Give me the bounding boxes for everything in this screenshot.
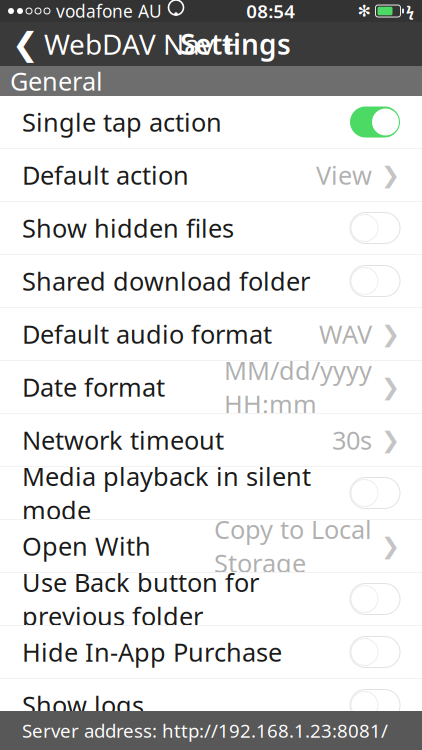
staticText: MM/dd/yyyy HH:mm — [224, 353, 372, 421]
staticText: Default action — [22, 158, 189, 192]
staticText: ❯ — [381, 427, 400, 453]
staticText: ❯ — [381, 533, 400, 559]
staticText: ❯ — [381, 374, 400, 400]
staticText: Server address: http://192.168.1.23:8081… — [22, 718, 388, 743]
button[interactable]: ❮ — [0, 17, 237, 71]
staticText: Open With — [22, 529, 151, 563]
button[interactable]: Use Back button for previous folder — [0, 573, 422, 626]
staticText: Date format — [22, 370, 165, 404]
staticText: ϟ — [406, 1, 414, 21]
staticText: General — [10, 64, 103, 98]
staticText: 30s — [332, 423, 372, 457]
staticText: Network timeout — [22, 423, 224, 457]
button[interactable]: Media playback in silent mode — [0, 467, 422, 520]
staticText: Media playback in silent mode — [22, 459, 311, 527]
button[interactable]: Show hidden files — [0, 202, 422, 255]
button[interactable]: Show logs — [0, 679, 422, 732]
staticText: ✻ — [357, 2, 370, 20]
button[interactable]: Default audio format — [0, 308, 422, 361]
staticText: Settings — [180, 25, 291, 63]
button[interactable]: Network timeout — [0, 414, 422, 467]
staticText: WebDAV Nav + — [44, 25, 237, 63]
staticText: Copy to Local Storage — [214, 512, 372, 580]
staticText: ❯ — [381, 321, 400, 347]
staticText: Use Back button for previous folder — [22, 565, 259, 633]
staticText: Show logs — [22, 688, 144, 722]
staticText: Single tap action — [22, 105, 222, 139]
staticText: Show hidden files — [22, 211, 234, 245]
staticText: Hide In-App Purchase — [22, 635, 282, 669]
staticText: Shared download folder — [22, 264, 310, 298]
staticText: View — [316, 158, 372, 192]
staticText: Default audio format — [22, 317, 272, 351]
staticText: WAV — [319, 317, 372, 351]
button[interactable]: Hide In-App Purchase — [0, 626, 422, 679]
staticText: ❮ — [12, 26, 39, 62]
staticText: 08:54 — [246, 0, 295, 23]
button[interactable]: Open With — [0, 520, 422, 573]
button[interactable]: Single tap action — [0, 96, 422, 149]
button[interactable]: Default action — [0, 149, 422, 202]
button[interactable]: Shared download folder — [0, 255, 422, 308]
staticText: ❯ — [381, 162, 400, 188]
staticText: vodafone AU — [56, 0, 162, 22]
button[interactable]: Date format — [0, 361, 422, 414]
